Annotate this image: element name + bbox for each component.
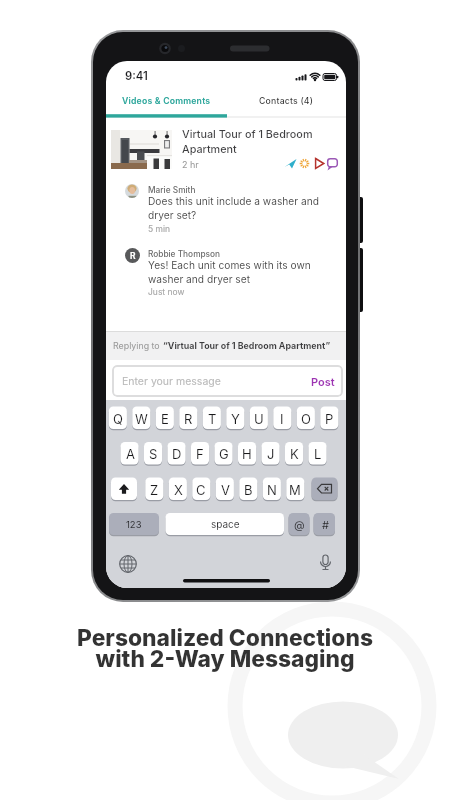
button[interactable] bbox=[313, 550, 338, 574]
staticText: Q bbox=[113, 411, 123, 427]
button[interactable]: F bbox=[191, 442, 209, 465]
button[interactable]: Videos & Comments bbox=[106, 91, 227, 111]
button[interactable]: D bbox=[168, 442, 186, 465]
staticText: Z bbox=[150, 482, 159, 498]
button[interactable]: A bbox=[121, 442, 139, 465]
staticText: C bbox=[196, 482, 206, 498]
staticText: V bbox=[221, 482, 230, 498]
button[interactable]: K bbox=[285, 442, 303, 465]
button[interactable]: R bbox=[179, 407, 197, 430]
button[interactable] bbox=[111, 478, 137, 501]
button[interactable]: C bbox=[192, 478, 210, 501]
staticText: U bbox=[254, 411, 264, 427]
button[interactable]: 123 bbox=[109, 513, 159, 535]
staticText: Videos & Comments bbox=[122, 96, 211, 107]
button[interactable]: G bbox=[215, 442, 233, 465]
staticText: M bbox=[289, 482, 301, 498]
button[interactable]: # bbox=[314, 513, 336, 535]
staticText: J bbox=[267, 446, 275, 462]
staticText: Contacts (4) bbox=[259, 96, 314, 107]
staticText: Robbie Thompson bbox=[148, 249, 221, 259]
staticText: B bbox=[244, 482, 253, 498]
staticText: D bbox=[172, 446, 182, 462]
staticText: 2 hr bbox=[182, 159, 199, 170]
staticText: S bbox=[149, 446, 158, 462]
staticText: # bbox=[322, 518, 329, 531]
button[interactable]: L bbox=[309, 442, 327, 465]
staticText: Post bbox=[311, 375, 335, 388]
staticText: O bbox=[301, 411, 311, 427]
staticText: E bbox=[161, 411, 169, 427]
staticText: Does this unit include a washer and drye… bbox=[148, 195, 319, 222]
button[interactable]: Q bbox=[109, 407, 127, 430]
staticText: K bbox=[290, 446, 299, 462]
button[interactable] bbox=[312, 478, 338, 501]
button[interactable]: E bbox=[156, 407, 174, 430]
staticText: A bbox=[126, 446, 135, 462]
button[interactable]: I bbox=[273, 407, 291, 430]
button[interactable]: P bbox=[320, 407, 338, 430]
staticText: H bbox=[242, 446, 252, 462]
staticText: Replying to bbox=[113, 340, 163, 351]
staticText: R bbox=[184, 411, 193, 427]
button[interactable]: H bbox=[238, 442, 256, 465]
staticText: 9:41 bbox=[125, 69, 148, 83]
staticText: Marie Smith bbox=[148, 185, 196, 195]
button[interactable]: Enter your message bbox=[112, 365, 343, 397]
staticText: 123 bbox=[126, 519, 142, 530]
button[interactable]: U bbox=[250, 407, 268, 430]
staticText: Just now bbox=[148, 287, 185, 297]
staticText: I bbox=[280, 411, 284, 427]
staticText: P bbox=[325, 411, 334, 427]
button[interactable] bbox=[111, 130, 172, 169]
staticText: space bbox=[211, 518, 240, 530]
staticText: W bbox=[135, 411, 148, 427]
staticText: F bbox=[196, 446, 204, 462]
staticText: Enter your message bbox=[122, 375, 221, 388]
staticText: N bbox=[267, 482, 277, 498]
button[interactable]: W bbox=[132, 407, 150, 430]
staticText: R bbox=[130, 251, 136, 261]
button[interactable]: V bbox=[216, 478, 234, 501]
button[interactable]: M bbox=[286, 478, 304, 501]
button[interactable]: X bbox=[169, 478, 187, 501]
staticText: “Virtual Tour of 1 Bedroom Apartment” bbox=[163, 340, 331, 351]
staticText: 5 min bbox=[148, 224, 171, 234]
staticText: T bbox=[208, 411, 217, 427]
button[interactable]: S bbox=[144, 442, 162, 465]
button[interactable]: T bbox=[203, 407, 221, 430]
button[interactable]: Contacts (4) bbox=[227, 91, 346, 111]
staticText: Yes! Each unit comes with its own washer… bbox=[148, 259, 311, 286]
button[interactable]: Z bbox=[145, 478, 163, 501]
staticText: L bbox=[314, 446, 322, 462]
button[interactable]: N bbox=[263, 478, 281, 501]
button[interactable]: Y bbox=[226, 407, 244, 430]
button[interactable]: J bbox=[262, 442, 280, 465]
staticText: X bbox=[174, 482, 183, 498]
button[interactable] bbox=[116, 552, 140, 576]
button[interactable]: O bbox=[297, 407, 315, 430]
button[interactable]: space bbox=[166, 513, 285, 535]
staticText: Y bbox=[231, 411, 240, 427]
button[interactable]: @ bbox=[289, 513, 310, 535]
button[interactable]: B bbox=[239, 478, 257, 501]
staticText: Personalized Connections with 2-Way Mess… bbox=[77, 624, 373, 672]
staticText: Virtual Tour of 1 Bedroom Apartment bbox=[182, 128, 313, 155]
button[interactable]: Post bbox=[306, 365, 340, 397]
staticText: G bbox=[219, 446, 229, 462]
staticText: @ bbox=[294, 518, 305, 531]
